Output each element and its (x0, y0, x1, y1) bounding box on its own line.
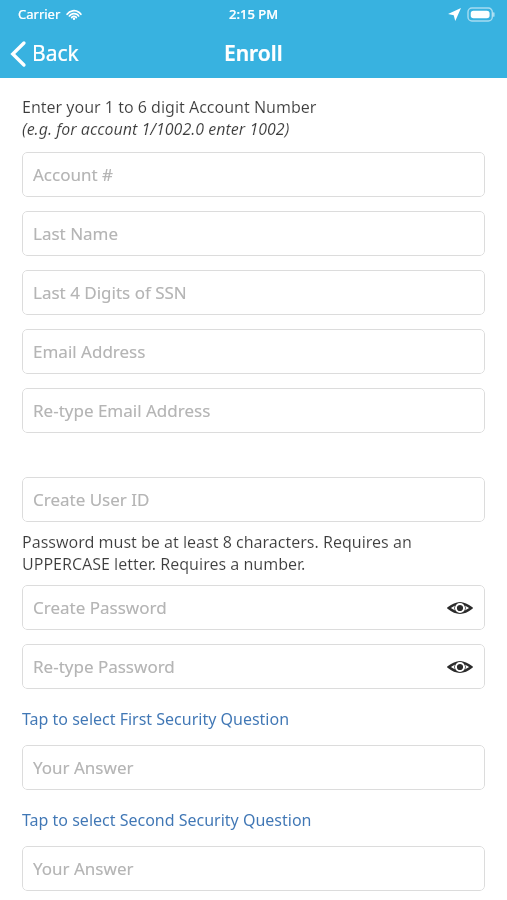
button[interactable]: Account # (22, 152, 485, 197)
button[interactable]: Last 4 Digits of SSN (22, 270, 485, 315)
staticText: Re-type Email Address (33, 399, 211, 422)
staticText: Create Password (33, 596, 167, 619)
staticText: Re-type Password (33, 655, 175, 678)
staticText: UPPERCASE letter. Requires a number. (22, 553, 306, 575)
button[interactable]: Re-type Password (22, 644, 485, 689)
button[interactable]: Email Address (22, 329, 485, 374)
staticText: Email Address (33, 340, 146, 363)
staticText: Tap to select Second Security Question (22, 809, 312, 831)
staticText: (e.g. for account 1/1002.0 enter 1002) (22, 118, 290, 140)
button[interactable]: Show password (443, 591, 477, 625)
button[interactable]: Last Name (22, 211, 485, 256)
staticText: Enroll (224, 39, 283, 68)
button[interactable]: Your Answer (22, 745, 485, 790)
button[interactable]: Back (0, 33, 93, 74)
button[interactable]: Tap to select First Security Question (22, 706, 485, 732)
staticText: Account # (33, 163, 114, 186)
staticText: Tap to select First Security Question (22, 708, 290, 730)
staticText: Last Name (33, 222, 119, 245)
button[interactable]: Tap to select Second Security Question (22, 807, 485, 833)
staticText: Back (32, 39, 79, 68)
button[interactable]: Re-type Email Address (22, 388, 485, 433)
button[interactable]: Your Answer (22, 846, 485, 891)
button[interactable]: Show password (443, 650, 477, 684)
staticText: Create User ID (33, 488, 150, 511)
staticText: Your Answer (33, 756, 134, 779)
staticText: Enter your 1 to 6 digit Account Number (22, 96, 317, 118)
button[interactable]: Create User ID (22, 477, 485, 522)
staticText: Last 4 Digits of SSN (33, 281, 187, 304)
button[interactable]: Create Password (22, 585, 485, 630)
staticText: Your Answer (33, 857, 134, 880)
staticText: Password must be at least 8 characters. … (22, 531, 412, 553)
staticText: 2:15 PM (229, 5, 279, 23)
staticText: Carrier (18, 5, 61, 23)
